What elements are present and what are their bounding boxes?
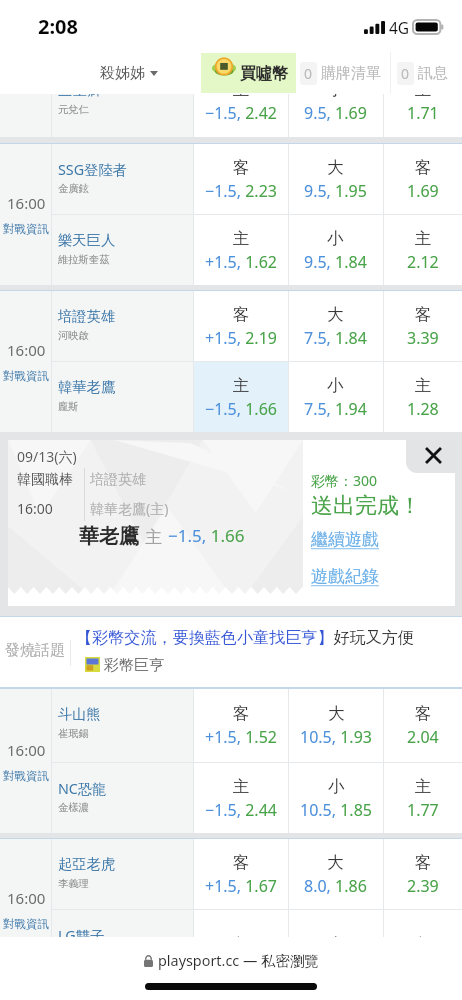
staticText: 10.5, 1.93 bbox=[300, 726, 372, 748]
staticText: 樂天巨人 bbox=[58, 231, 116, 249]
button[interactable]: 對戰資訊 bbox=[3, 769, 49, 783]
button[interactable]: 遊戲紀錄 bbox=[311, 566, 379, 587]
button[interactable]: 樂天巨人 bbox=[52, 215, 193, 285]
staticText: 維拉斯奎茲 bbox=[58, 253, 110, 266]
staticText: 2.12 bbox=[407, 251, 439, 273]
staticText: 韓華老鷹(主) bbox=[90, 499, 169, 518]
staticText: −1.5, 2.42 bbox=[205, 102, 277, 124]
button[interactable]: 主 bbox=[383, 65, 462, 137]
staticText: 客 bbox=[415, 852, 432, 873]
button[interactable]: 大 bbox=[288, 144, 383, 214]
button[interactable]: 客 bbox=[383, 839, 462, 909]
button[interactable]: 斗山熊 bbox=[52, 689, 193, 762]
staticText: 主 bbox=[145, 527, 162, 548]
staticText: 主 bbox=[415, 79, 432, 100]
button[interactable]: 小 bbox=[288, 215, 383, 285]
button[interactable]: 小 bbox=[288, 65, 383, 137]
staticText: 3.39 bbox=[407, 327, 439, 349]
staticText: 小 bbox=[327, 79, 344, 100]
staticText: −1.5, 2.23 bbox=[205, 180, 277, 202]
staticText: 0 bbox=[401, 64, 410, 83]
staticText: 買噓幣 bbox=[240, 64, 288, 84]
staticText: 9.5, 1.69 bbox=[304, 102, 367, 124]
staticText: 殺姊姊 bbox=[100, 64, 145, 83]
button[interactable]: 主 bbox=[383, 215, 462, 285]
staticText: 主 bbox=[233, 375, 250, 396]
staticText: 韓國職棒 bbox=[17, 471, 73, 489]
button[interactable]: 繼續遊戲 bbox=[311, 529, 379, 550]
staticText: 河映啟 bbox=[58, 329, 89, 342]
button[interactable]: 小 bbox=[288, 910, 383, 980]
staticText: −1.5, 2.44 bbox=[205, 799, 277, 821]
button[interactable]: 主 bbox=[383, 362, 462, 432]
button[interactable]: 培證英雄 bbox=[52, 291, 193, 361]
staticText: 主 bbox=[415, 375, 432, 396]
staticText: 三星獅 bbox=[58, 81, 101, 99]
button[interactable]: 大 bbox=[288, 689, 383, 762]
button[interactable]: 主 bbox=[193, 65, 288, 137]
button[interactable]: 0 bbox=[397, 52, 448, 94]
staticText: 大 bbox=[327, 852, 344, 873]
staticText: 華老鷹 bbox=[79, 524, 139, 549]
button[interactable]: SSG登陸者 bbox=[52, 144, 193, 214]
button[interactable]: Close bbox=[406, 440, 455, 473]
staticText: 16:00 bbox=[7, 340, 46, 360]
staticText: 送出完成！ bbox=[311, 492, 421, 520]
staticText: 16:00 bbox=[7, 193, 46, 213]
staticText: 培證英雄 bbox=[58, 307, 116, 325]
staticText: 彩幣：300 bbox=[311, 471, 378, 490]
button[interactable]: 韓華老鷹 bbox=[52, 362, 193, 432]
staticText: 主 bbox=[415, 228, 432, 249]
staticText: 9.5, 1.84 bbox=[304, 251, 367, 273]
button[interactable]: 客 bbox=[383, 689, 462, 762]
button[interactable]: 大 bbox=[288, 839, 383, 909]
button[interactable]: 對戰資訊 bbox=[3, 222, 49, 236]
button[interactable]: 主 bbox=[383, 763, 462, 833]
button[interactable]: 起亞老虎 bbox=[52, 839, 193, 909]
staticText: +1.5, 1.67 bbox=[205, 875, 277, 897]
button[interactable]: 對戰資訊 bbox=[3, 917, 49, 931]
button[interactable]: NC恐龍 bbox=[52, 763, 193, 833]
button[interactable]: 買噓幣 bbox=[201, 53, 296, 93]
staticText: +1.5, 2.19 bbox=[205, 327, 277, 349]
staticText: 小 bbox=[327, 228, 344, 249]
button[interactable]: LG雙子 bbox=[52, 910, 193, 980]
button[interactable]: 對戰資訊 bbox=[3, 369, 49, 383]
staticText: 小 bbox=[328, 776, 345, 797]
button[interactable]: 主 bbox=[193, 910, 288, 980]
staticText: −1.5, 1.66 bbox=[168, 524, 245, 547]
button[interactable]: 主 bbox=[193, 215, 288, 285]
staticText: 9.5, 1.95 bbox=[304, 180, 367, 202]
button[interactable]: 客 bbox=[193, 144, 288, 214]
button[interactable]: 客 bbox=[193, 839, 288, 909]
button[interactable]: 客 bbox=[383, 291, 462, 361]
button[interactable]: 客 bbox=[193, 689, 288, 762]
button[interactable]: 主 bbox=[193, 362, 288, 432]
button[interactable]: 小 bbox=[288, 763, 383, 833]
staticText: 客 bbox=[233, 703, 250, 724]
button[interactable]: 客 bbox=[383, 144, 462, 214]
staticText: 8.0, 1.86 bbox=[304, 875, 367, 897]
button[interactable]: 0 bbox=[300, 52, 381, 94]
staticText: 主 bbox=[415, 776, 432, 797]
button[interactable]: 三星獅 bbox=[52, 65, 193, 137]
staticText: 金廣鉉 bbox=[58, 182, 89, 195]
staticText: 2.04 bbox=[407, 726, 439, 748]
staticText: playsport.cc — 私密瀏覽 bbox=[158, 951, 319, 971]
staticText: 16:00 bbox=[7, 740, 46, 760]
staticText: 元兌仁 bbox=[58, 103, 89, 116]
staticText: 龐斯 bbox=[58, 400, 79, 413]
button[interactable]: 殺姊姊 bbox=[100, 52, 158, 94]
button[interactable]: 小 bbox=[288, 362, 383, 432]
staticText: LG雙子 bbox=[58, 926, 105, 946]
staticText: 主 bbox=[233, 228, 250, 249]
staticText: 遊戲紀錄 bbox=[311, 566, 379, 587]
staticText: 繼續遊戲 bbox=[311, 529, 379, 550]
button[interactable]: 大 bbox=[288, 291, 383, 361]
button[interactable]: 客 bbox=[193, 291, 288, 361]
staticText: 客 bbox=[233, 852, 250, 873]
button[interactable]: 主 bbox=[193, 763, 288, 833]
staticText: NC恐龍 bbox=[58, 779, 107, 799]
button[interactable]: 發燒話題 bbox=[0, 617, 462, 687]
